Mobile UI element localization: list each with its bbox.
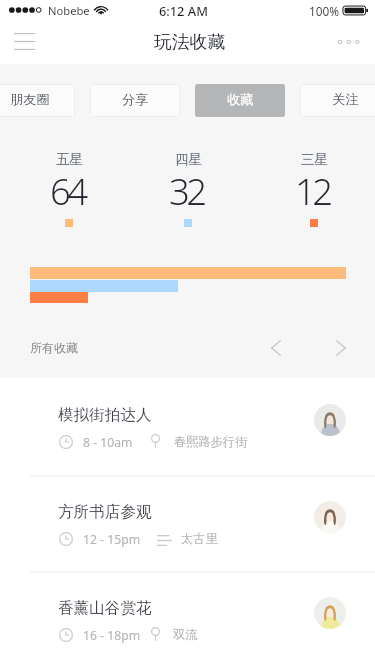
staticText: 太古里 <box>181 531 218 546</box>
staticText: 五星 <box>56 151 83 168</box>
staticText: 关注 <box>332 91 359 108</box>
staticText: 12 <box>295 166 330 216</box>
button[interactable]: 方所书店参观 <box>0 475 375 571</box>
staticText: 四星 <box>175 151 202 168</box>
staticText: 100% <box>309 3 340 19</box>
staticText: 8 - 10am <box>83 434 133 451</box>
staticText: 方所书店参观 <box>58 502 152 522</box>
staticText: 16 - 18pm <box>83 627 141 644</box>
button[interactable]: 分享 <box>90 84 180 117</box>
staticText: 收藏 <box>227 91 254 108</box>
staticText: Nobebe <box>48 3 90 18</box>
button[interactable]: Previous <box>261 333 291 363</box>
staticText: 香薰山谷赏花 <box>58 598 152 618</box>
staticText: 玩法收藏 <box>154 31 226 53</box>
staticText: 双流 <box>173 627 198 642</box>
button[interactable]: 朋友圈 <box>0 84 75 117</box>
staticText: 12 - 15pm <box>83 531 141 548</box>
button[interactable]: More options <box>324 22 368 62</box>
button[interactable]: 模拟街拍达人 <box>0 378 375 474</box>
staticText: 所有收藏 <box>30 340 78 355</box>
button[interactable]: Next <box>326 333 356 363</box>
staticText: 朋友圈 <box>10 91 50 108</box>
button[interactable]: 香薰山谷赏花 <box>0 571 375 667</box>
staticText: 32 <box>169 166 204 216</box>
button[interactable]: Menu <box>3 22 47 62</box>
staticText: 春熙路步行街 <box>174 434 248 449</box>
staticText: 6:12 AM <box>159 2 208 19</box>
staticText: 分享 <box>122 91 149 108</box>
button[interactable]: 收藏 <box>195 84 285 117</box>
staticText: 64 <box>50 166 85 216</box>
button[interactable]: 关注 <box>300 84 375 117</box>
staticText: 模拟街拍达人 <box>58 405 152 425</box>
staticText: 三星 <box>301 151 328 168</box>
